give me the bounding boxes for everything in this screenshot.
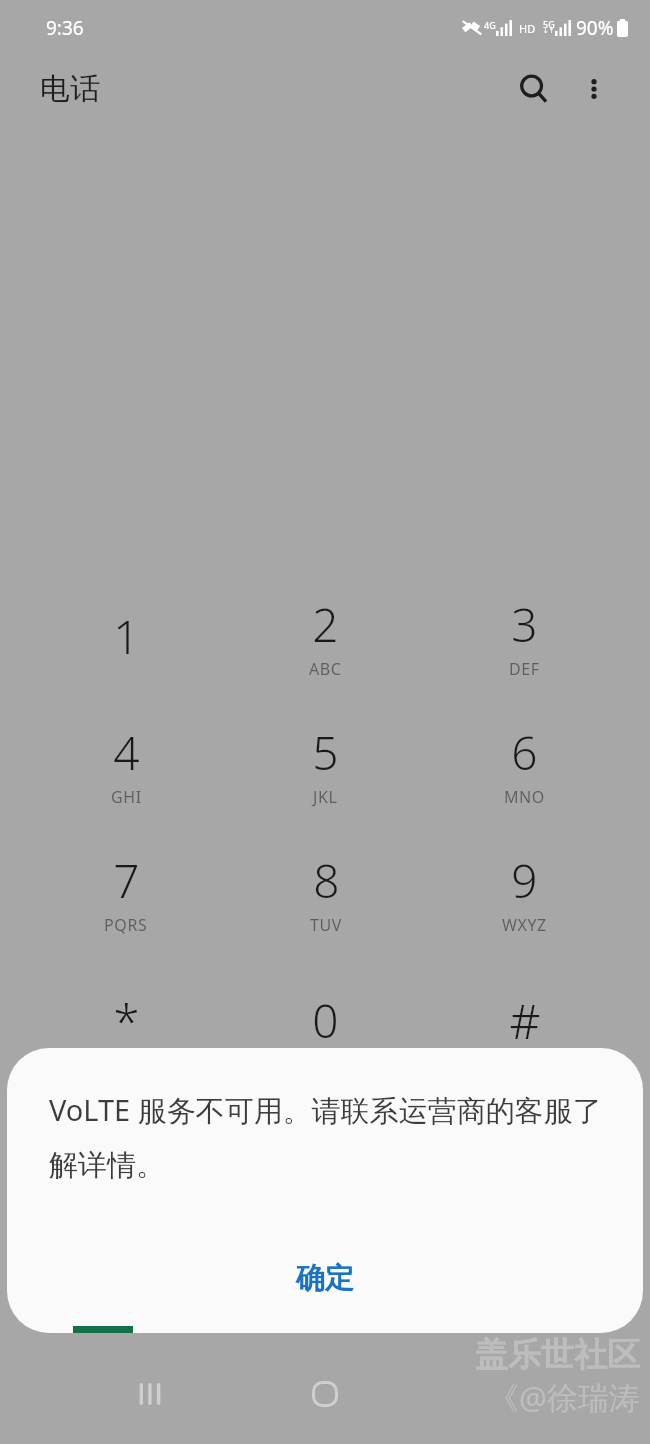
button[interactable]: 1: [26, 572, 226, 700]
button[interactable]: 3: [425, 572, 624, 700]
staticText: 90%: [576, 15, 614, 41]
staticText: ↓↑: [543, 27, 555, 35]
button[interactable]: Search: [506, 61, 562, 117]
staticText: 5: [312, 721, 339, 784]
staticText: 盖乐世社区: [475, 1334, 640, 1376]
staticText: #: [509, 988, 541, 1053]
button[interactable]: Back: [468, 1362, 532, 1426]
staticText: 确定: [296, 1260, 354, 1297]
staticText: VoLTE 服务不可用。请联系运营商的客服了解详情。: [49, 1090, 607, 1184]
button[interactable]: 4: [26, 700, 226, 828]
staticText: 9: [511, 849, 538, 912]
button[interactable]: Home: [293, 1362, 357, 1426]
staticText: DEF: [509, 658, 540, 680]
staticText: TUV: [310, 914, 342, 936]
staticText: 9:36: [46, 15, 84, 41]
button[interactable]: 9: [425, 828, 624, 956]
staticText: 6: [511, 721, 538, 784]
button[interactable]: 确定: [250, 1250, 400, 1307]
button[interactable]: 8: [226, 828, 425, 956]
staticText: HD: [519, 21, 536, 36]
button[interactable]: *: [26, 956, 226, 1084]
staticText: JKL: [313, 786, 338, 808]
staticText: WXYZ: [502, 914, 547, 936]
button[interactable]: 2: [226, 572, 425, 700]
button[interactable]: More options: [566, 61, 622, 117]
staticText: PQRS: [104, 914, 148, 936]
staticText: ABC: [309, 658, 342, 680]
button[interactable]: 5: [226, 700, 425, 828]
staticText: GHI: [111, 786, 142, 808]
staticText: 《@徐瑞涛: [488, 1376, 640, 1418]
staticText: 电话: [40, 70, 100, 108]
staticText: 0: [312, 989, 339, 1052]
button[interactable]: 0: [226, 956, 425, 1084]
staticText: 3: [511, 593, 538, 656]
staticText: 5G: [543, 18, 555, 30]
button[interactable]: Recent apps: [118, 1362, 182, 1426]
staticText: 1: [113, 605, 140, 668]
staticText: *: [113, 988, 140, 1053]
staticText: 4G: [484, 19, 496, 31]
button[interactable]: 7: [26, 828, 226, 956]
staticText: 4: [113, 721, 140, 784]
staticText: 8: [313, 849, 340, 912]
staticText: MNO: [504, 786, 545, 808]
button[interactable]: 6: [425, 700, 624, 828]
staticText: 2: [312, 593, 339, 656]
button[interactable]: #: [425, 956, 624, 1084]
staticText: 7: [113, 849, 140, 912]
